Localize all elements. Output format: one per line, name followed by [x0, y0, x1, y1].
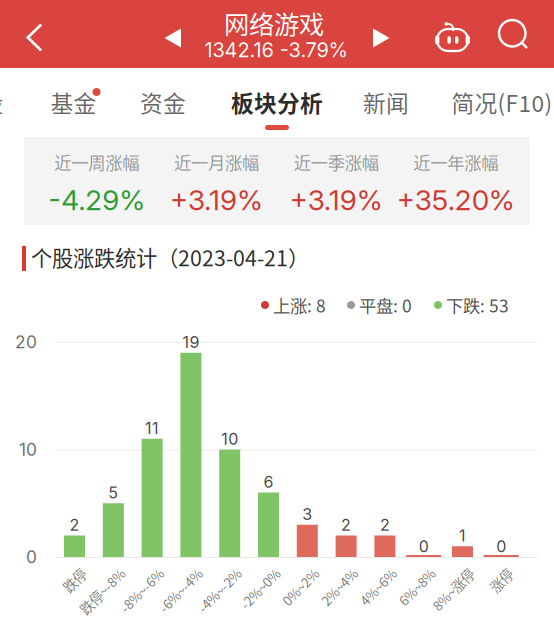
staticText: 0 [26, 546, 37, 567]
staticText: 0 [496, 537, 506, 556]
staticText: 20 [15, 331, 37, 352]
staticText: 5 [108, 483, 118, 502]
staticText: 2 [380, 515, 390, 535]
staticText: 0 [419, 537, 429, 556]
staticText: 近一季涨幅 [294, 149, 379, 175]
staticText: +3.19% [290, 183, 383, 217]
staticText: 10 [221, 429, 238, 449]
staticText: 平盘: 0 [359, 292, 412, 318]
staticText: 资金 [140, 86, 186, 118]
button[interactable]: 简况(F10) [437, 68, 554, 137]
staticText: 下跌: 53 [446, 292, 509, 318]
button[interactable]: 资金 [127, 68, 199, 137]
button[interactable]: Back [0, 0, 50, 68]
staticText: 跌停 [57, 561, 83, 581]
staticText: 19 [182, 333, 199, 352]
staticText: 涨停 [484, 561, 510, 581]
staticText: 新闻 [363, 86, 409, 118]
staticText: 股 [0, 86, 3, 118]
button[interactable]: 基金 [37, 68, 109, 137]
staticText: 6%~8% [388, 561, 433, 581]
staticText: +35.20% [397, 183, 515, 217]
staticText: 网络游戏 [224, 5, 324, 41]
button[interactable]: Next sector [359, 13, 403, 63]
button[interactable]: 板块分析 [216, 68, 338, 137]
staticText: 1 [459, 526, 466, 545]
staticText: 简况(F10) [451, 86, 552, 118]
staticText: 3 [302, 505, 312, 524]
staticText: 2%~4% [310, 561, 355, 581]
staticText: -4%~-2% [184, 561, 239, 581]
staticText: 近一年涨幅 [413, 149, 498, 175]
staticText: 跌停~-8% [65, 561, 122, 581]
staticText: -8%~-6% [106, 561, 161, 581]
staticText: 6 [263, 472, 273, 492]
staticText: +3.19% [170, 183, 263, 217]
staticText: 4%~6% [349, 561, 394, 581]
staticText: 基金 [50, 86, 96, 118]
button[interactable]: 新闻 [347, 68, 425, 137]
staticText: -6%~-4% [145, 561, 200, 581]
staticText: 0%~2% [271, 561, 316, 581]
staticText: 近一周涨幅 [54, 149, 139, 175]
staticText: 个股涨跌统计（2023-04-21） [31, 242, 309, 272]
button[interactable]: Search [489, 7, 539, 65]
staticText: 近一月涨幅 [174, 149, 259, 175]
staticText: 10 [19, 439, 37, 460]
staticText: 2 [69, 515, 79, 535]
button[interactable]: 股 [0, 68, 17, 137]
staticText: 板块分析 [231, 86, 323, 118]
staticText: 2 [341, 515, 351, 535]
staticText: 上涨: 8 [273, 292, 326, 318]
staticText: 1342.16 -3.79% [204, 38, 347, 62]
button[interactable]: Previous sector [151, 13, 195, 63]
staticText: 8%~涨停 [419, 561, 471, 581]
staticText: 11 [145, 419, 159, 438]
staticText: -4.29% [48, 183, 145, 217]
button[interactable]: AI assistant [429, 7, 477, 65]
staticText: -2%~0% [227, 561, 277, 581]
